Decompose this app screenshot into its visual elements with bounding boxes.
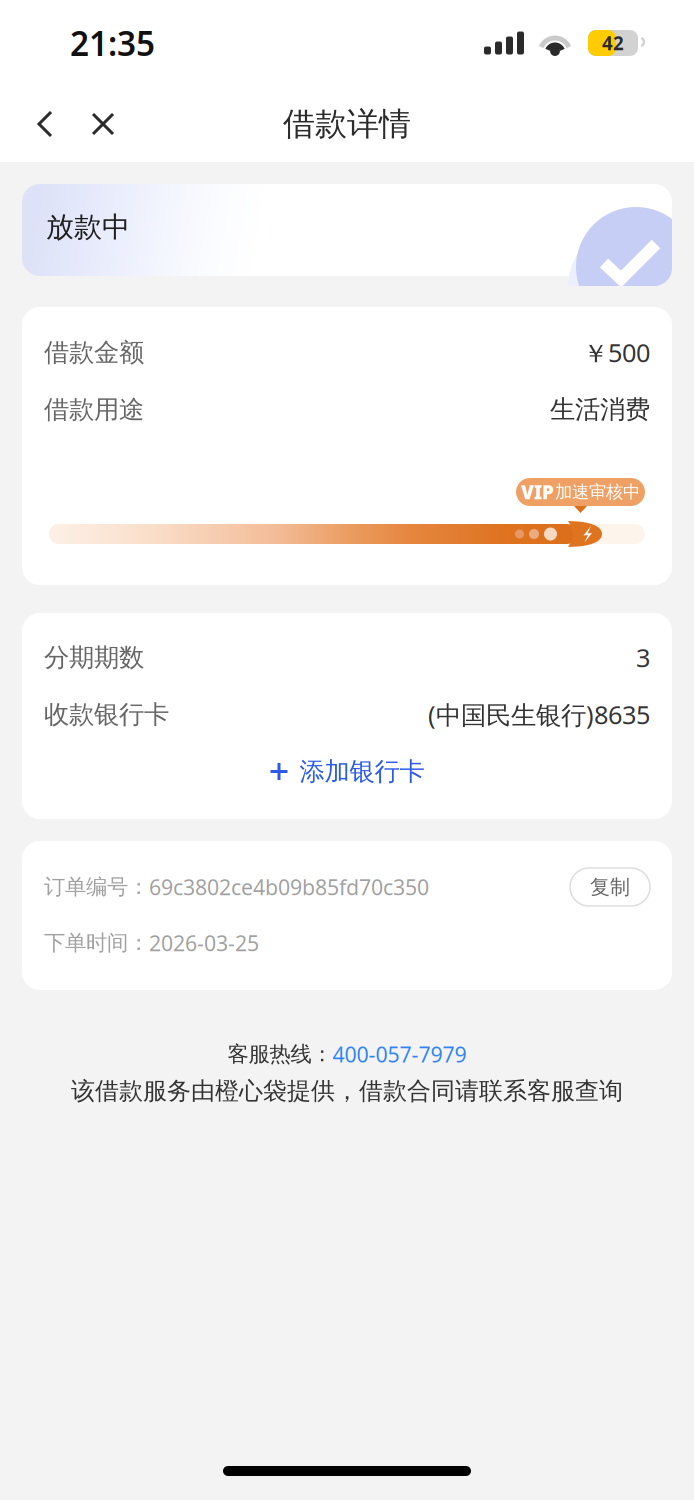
staticText: 400-057-7979: [332, 1040, 466, 1068]
staticText: 42: [602, 31, 624, 55]
staticText: 生活消费: [550, 394, 650, 425]
staticText: 借款用途: [44, 394, 144, 425]
button[interactable]: 复制: [570, 868, 650, 906]
button[interactable]: 添加银行卡: [44, 743, 650, 800]
button[interactable]: 返回: [16, 94, 74, 154]
staticText: 订单编号：: [44, 874, 149, 900]
button[interactable]: 400-057-7979: [332, 1040, 466, 1068]
staticText: 该借款服务由橙心袋提供，借款合同请联系客服查询: [71, 1076, 623, 1106]
staticText: ￥500: [583, 336, 650, 369]
staticText: 借款金额: [44, 337, 144, 368]
staticText: 3: [636, 641, 650, 674]
staticText: 借款详情: [283, 104, 411, 144]
staticText: 添加银行卡: [299, 756, 424, 787]
staticText: 放款中: [46, 210, 130, 244]
staticText: 收款银行卡: [44, 699, 169, 730]
staticText: 客服热线：: [227, 1041, 332, 1067]
staticText: 加速审核中: [555, 481, 640, 503]
staticText: 下单时间：: [44, 930, 149, 956]
staticText: 2026-03-25: [149, 929, 259, 957]
staticText: (中国民生银行)8635: [428, 698, 650, 731]
staticText: 分期期数: [44, 642, 144, 673]
staticText: 69c3802ce4b09b85fd70c350: [149, 873, 429, 901]
staticText: 21:35: [70, 21, 155, 65]
button[interactable]: 关闭: [74, 94, 132, 154]
staticText: 复制: [590, 875, 630, 899]
staticText: VIP: [521, 480, 554, 504]
